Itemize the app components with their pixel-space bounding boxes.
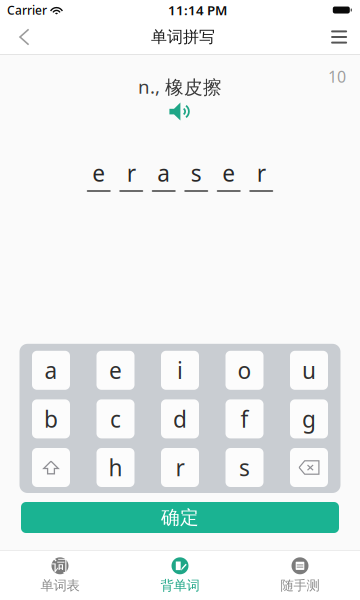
button[interactable]: c	[96, 399, 134, 438]
staticText: r	[127, 158, 136, 188]
staticText: a	[157, 158, 170, 188]
staticText: d	[173, 404, 187, 434]
staticText: e	[222, 158, 235, 188]
staticText: 单词表	[40, 577, 79, 594]
button[interactable]: Delete	[290, 448, 328, 487]
button[interactable]: g	[290, 399, 328, 438]
staticText: o	[237, 355, 251, 385]
button[interactable]: Menu	[303, 20, 360, 54]
button[interactable]: u	[290, 351, 328, 390]
button[interactable]: h	[96, 448, 134, 487]
staticText: e	[92, 158, 105, 188]
button[interactable]: 随手测	[240, 551, 360, 600]
button[interactable]: o	[225, 351, 263, 390]
staticText: 背单词	[160, 577, 199, 594]
staticText: 确定	[161, 506, 199, 529]
staticText: b	[44, 404, 58, 434]
button[interactable]: Play pronunciation	[169, 102, 191, 121]
button[interactable]: 词	[0, 551, 120, 600]
staticText: i	[177, 355, 183, 385]
button[interactable]: 背单词	[120, 551, 240, 600]
button[interactable]: i	[161, 351, 199, 390]
staticText: c	[110, 404, 121, 434]
button[interactable]: 确定	[21, 502, 339, 533]
button[interactable]: r	[161, 448, 199, 487]
button[interactable]: b	[32, 399, 70, 438]
staticText: n., 橡皮擦	[138, 74, 222, 99]
staticText: g	[302, 404, 316, 434]
staticText: h	[108, 452, 122, 482]
staticText: 10	[328, 66, 346, 87]
staticText: u	[302, 355, 316, 385]
button[interactable]: s	[225, 448, 263, 487]
staticText: r	[257, 158, 266, 188]
staticText: 单词拼写	[151, 27, 215, 47]
staticText: 随手测	[280, 577, 319, 594]
button[interactable]: f	[225, 399, 263, 438]
button[interactable]: a	[32, 351, 70, 390]
staticText: Carrier	[7, 2, 47, 18]
staticText: a	[44, 355, 57, 385]
staticText: e	[109, 355, 122, 385]
staticText: 11:14 PM	[168, 1, 227, 19]
button[interactable]: e	[96, 351, 134, 390]
button[interactable]: Shift	[32, 448, 70, 487]
staticText: s	[191, 158, 202, 188]
staticText: r	[175, 452, 184, 482]
staticText: s	[239, 452, 250, 482]
button[interactable]: Back	[0, 20, 63, 54]
staticText: 词	[52, 556, 68, 576]
staticText: f	[240, 404, 248, 434]
button[interactable]: d	[161, 399, 199, 438]
